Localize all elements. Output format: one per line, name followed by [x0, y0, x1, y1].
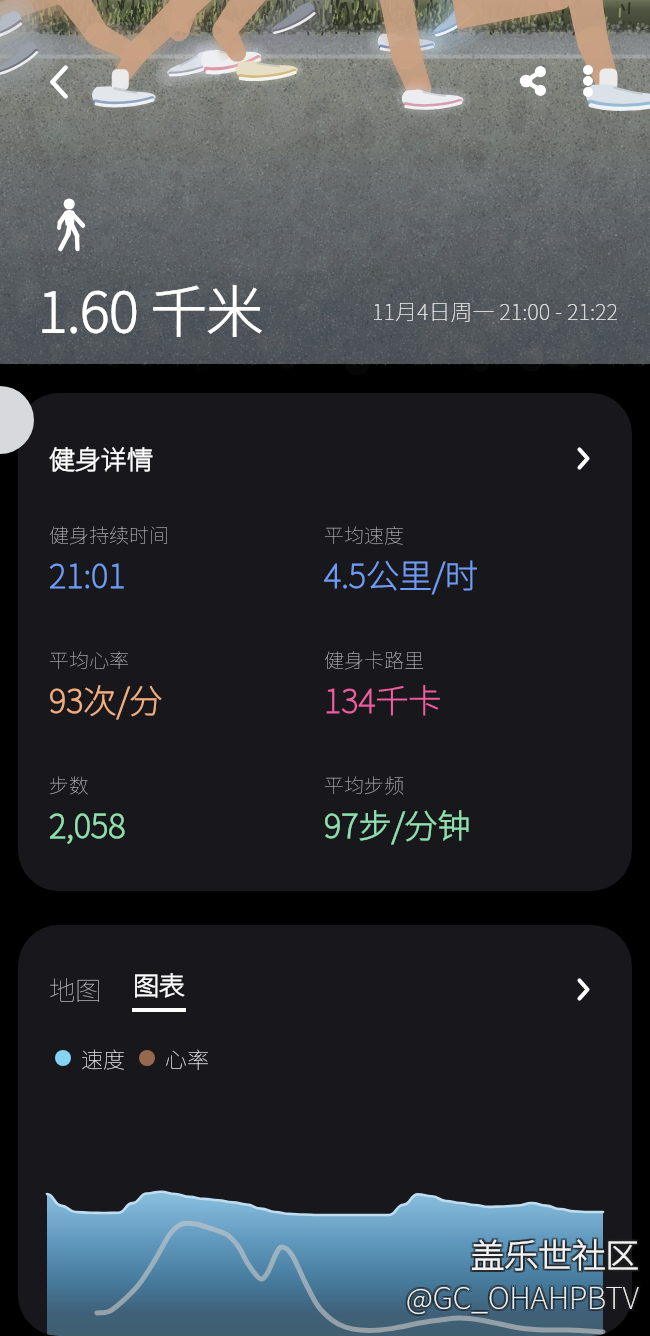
staticText: 健身持续时间 [49, 520, 169, 549]
staticText: 平均速度 [324, 520, 404, 549]
staticText: 健身详情 [49, 439, 154, 477]
staticText: @GC_OHAHPBTV [404, 1272, 637, 1316]
staticText: 盖乐世社区 [473, 1229, 641, 1278]
staticText: 平均心率 [49, 645, 129, 674]
staticText: 图表 [133, 965, 186, 1003]
staticText: @GC_OHAHPBTV [406, 1272, 639, 1316]
staticText: 心率 [165, 1042, 210, 1074]
staticText: 盖乐世社区 [471, 1229, 639, 1278]
staticText: @GC_OHAHPBTV [408, 1274, 641, 1318]
staticText: 4.5公里/时 [324, 550, 479, 598]
staticText: 盖乐世社区 [469, 1231, 637, 1280]
staticText: 速度 [81, 1042, 126, 1074]
staticText: 步数 [49, 770, 89, 799]
staticText: 2,058 [49, 800, 126, 848]
staticText: 盖乐世社区 [471, 1227, 639, 1276]
staticText: 1.60 千米 [38, 267, 263, 348]
staticText: 盖乐世社区 [469, 1229, 637, 1278]
staticText: 地图 [49, 970, 102, 1008]
staticText: @GC_OHAHPBTV [406, 1276, 639, 1320]
button[interactable]: 地图 [49, 970, 102, 1008]
staticText: 134千卡 [324, 675, 442, 723]
button[interactable]: Back [35, 58, 83, 106]
staticText: @GC_OHAHPBTV [408, 1276, 641, 1320]
button[interactable]: Share [509, 57, 557, 105]
button[interactable]: More options [564, 57, 612, 105]
other: Workout details [566, 441, 600, 475]
staticText: 97步/分钟 [324, 800, 471, 848]
staticText: @GC_OHAHPBTV [406, 1274, 639, 1318]
staticText: 21:01 [49, 550, 126, 598]
staticText: 盖乐世社区 [473, 1231, 641, 1280]
staticText: 盖乐世社区 [471, 1231, 639, 1280]
staticText: 健身卡路里 [324, 645, 424, 674]
staticText: @GC_OHAHPBTV [408, 1272, 641, 1316]
staticText: @GC_OHAHPBTV [404, 1274, 637, 1318]
staticText: 11月4日周一 21:00 - 21:22 [372, 294, 618, 326]
staticText: 平均步频 [324, 770, 404, 799]
button[interactable]: 健身详情 [18, 393, 632, 891]
staticText: @GC_OHAHPBTV [404, 1276, 637, 1320]
staticText: 盖乐世社区 [473, 1227, 641, 1276]
button[interactable]: Open chart [566, 972, 600, 1006]
staticText: 93次/分 [49, 675, 163, 723]
staticText: 盖乐世社区 [469, 1227, 637, 1276]
button[interactable]: 图表 [132, 965, 186, 1012]
